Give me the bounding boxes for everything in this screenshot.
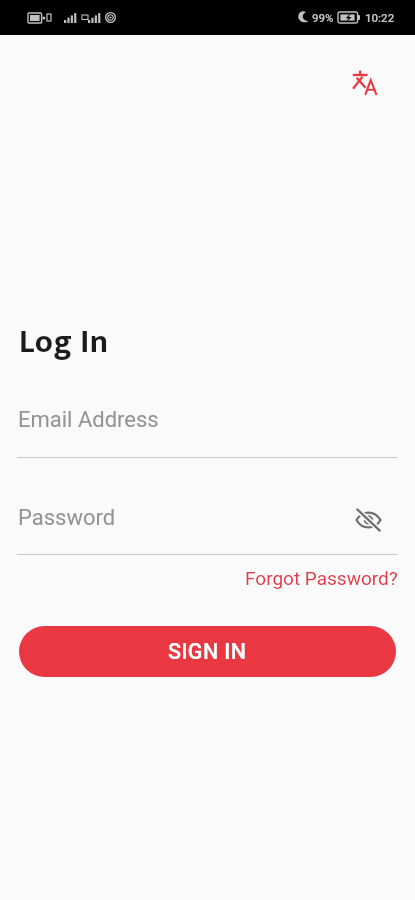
staticText: Password	[18, 505, 116, 531]
staticText: Log In	[19, 315, 109, 369]
button[interactable]: Forgot Password?	[237, 561, 406, 595]
button[interactable]: SIGN IN	[19, 626, 396, 677]
staticText: Forgot Password?	[245, 567, 398, 589]
button[interactable]: Change language	[345, 62, 385, 102]
staticText: Email Address	[18, 407, 159, 433]
staticText: 99%	[312, 11, 334, 24]
button[interactable]: Show password	[352, 504, 385, 535]
staticText: 10:22	[365, 11, 395, 24]
staticText: SIGN IN	[168, 639, 247, 664]
